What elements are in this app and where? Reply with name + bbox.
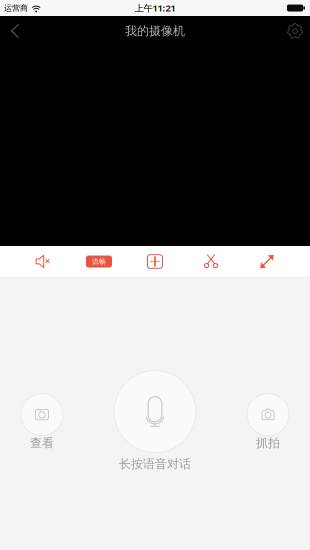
button[interactable]: Add (133, 246, 177, 277)
button[interactable]: 查看 (10, 393, 74, 451)
staticText: 流畅 (92, 257, 106, 266)
button[interactable]: Fullscreen (245, 246, 289, 277)
button[interactable]: 长按语音对话 (100, 371, 210, 471)
staticText: 抓拍 (256, 436, 280, 450)
button[interactable]: 抓拍 (236, 393, 300, 451)
button[interactable]: Settings (280, 16, 310, 46)
button[interactable]: 流畅 (77, 246, 121, 277)
staticText: 上午11:21 (134, 2, 175, 14)
staticText: 运营商 (4, 3, 28, 13)
button[interactable]: Back (0, 16, 30, 46)
button[interactable]: Clip (189, 246, 233, 277)
button[interactable]: Mute (21, 246, 65, 277)
staticText: 长按语音对话 (119, 457, 191, 471)
staticText: 查看 (30, 436, 54, 450)
staticText: 我的摄像机 (125, 24, 185, 38)
